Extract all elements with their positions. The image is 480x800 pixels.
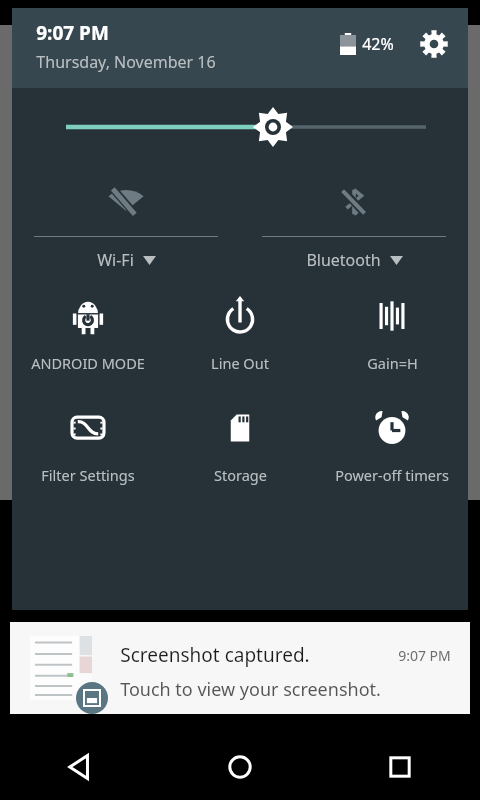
staticText: Wi-Fi [97, 249, 134, 271]
button[interactable]: ANDROID MODE [12, 289, 164, 379]
staticText: 42% [362, 33, 394, 55]
button[interactable]: Line Out [164, 289, 316, 379]
button[interactable]: Storage [164, 401, 316, 491]
button[interactable]: Power-off timers [316, 401, 468, 491]
button[interactable]: Recents [320, 734, 480, 800]
button[interactable]: Screenshot captured. [10, 622, 470, 714]
button[interactable]: Back [0, 734, 160, 800]
staticText: ANDROID MODE [31, 353, 145, 373]
button[interactable]: Gain=H [316, 289, 468, 379]
staticText: Power-off timers [335, 465, 449, 485]
button[interactable]: Bluetooth [240, 166, 468, 271]
staticText: 9:07 PM [36, 20, 109, 46]
button[interactable]: Filter Settings [12, 401, 164, 491]
staticText: Bluetooth [306, 249, 381, 271]
staticText: Line Out [211, 353, 269, 373]
staticText: 9:07 PM [398, 646, 451, 665]
staticText: Thursday, November 16 [36, 51, 216, 73]
staticText: Filter Settings [41, 465, 135, 485]
staticText: Storage [214, 465, 267, 485]
button[interactable]: Wi-Fi [12, 166, 240, 271]
staticText: Gain=H [367, 353, 418, 373]
button[interactable]: Home [160, 734, 320, 800]
button[interactable]: Settings [412, 22, 456, 66]
staticText: Touch to view your screenshot. [120, 677, 381, 702]
button[interactable] [12, 88, 468, 166]
staticText: Screenshot captured. [120, 642, 310, 668]
